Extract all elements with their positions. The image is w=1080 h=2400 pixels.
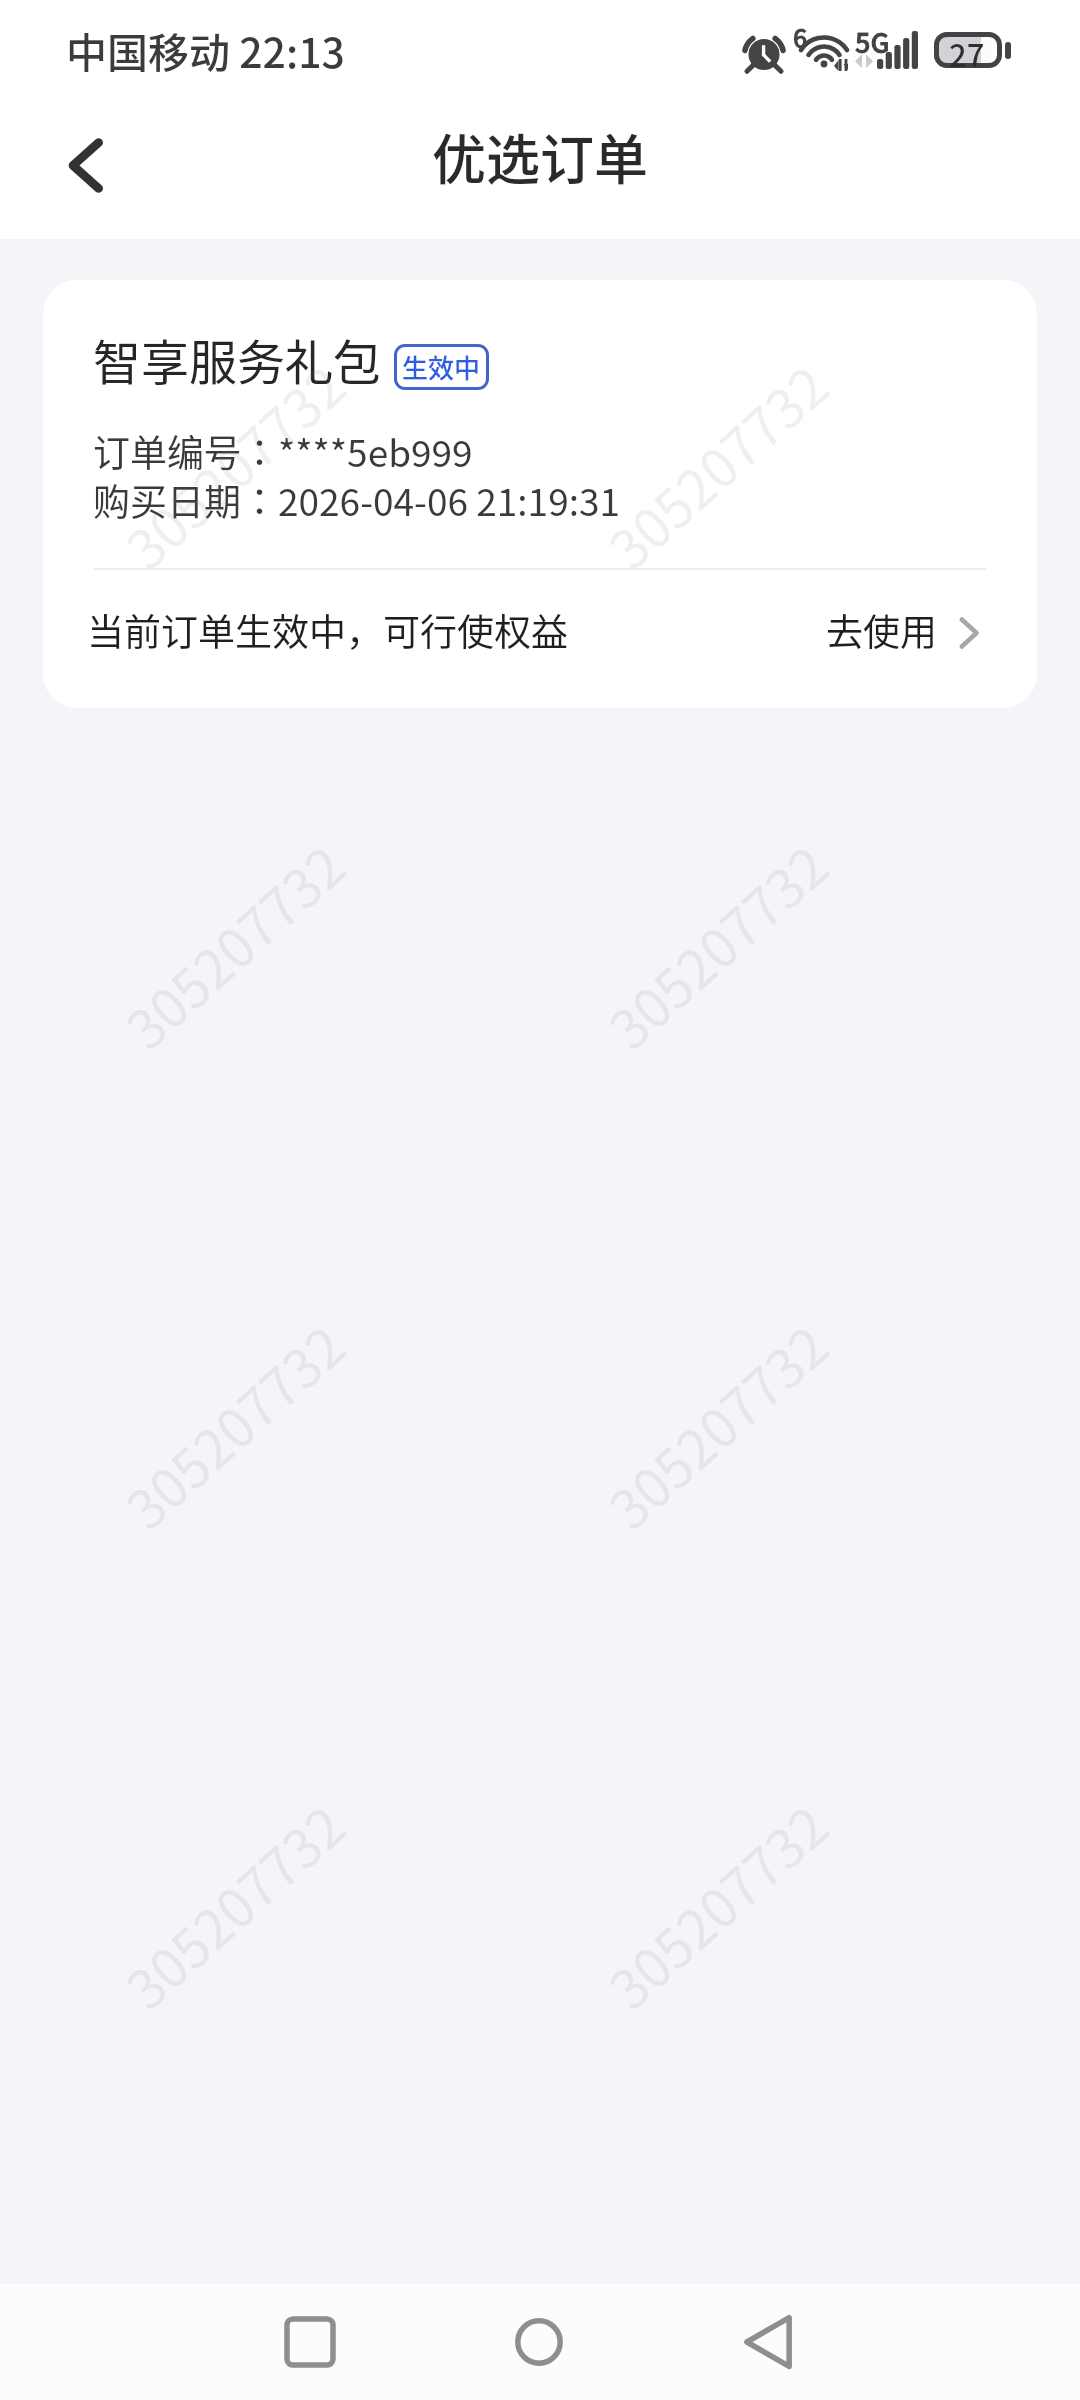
staticText: 27 (949, 31, 985, 67)
staticText: 智享服务礼包 (93, 324, 382, 394)
staticText: 优选订单 (432, 117, 648, 195)
staticText: 中国移动 22:13 (66, 20, 345, 79)
button[interactable]: Back (39, 124, 131, 216)
button[interactable]: Recent apps (250, 2284, 370, 2400)
staticText: 生效中 (402, 348, 481, 386)
button[interactable]: 当前订单生效中，可行使权益 (43, 570, 1037, 690)
button[interactable]: Back (708, 2284, 828, 2400)
staticText: 5G (855, 22, 890, 61)
staticText: 去使用 (826, 603, 937, 657)
button[interactable]: Home (479, 2284, 599, 2400)
staticText: 6 (793, 19, 808, 55)
staticText: 当前订单生效中，可行使权益 (87, 603, 568, 657)
staticText: 订单编号：****5eb999 购买日期：2026-04-06 21:19:31 (93, 424, 621, 527)
